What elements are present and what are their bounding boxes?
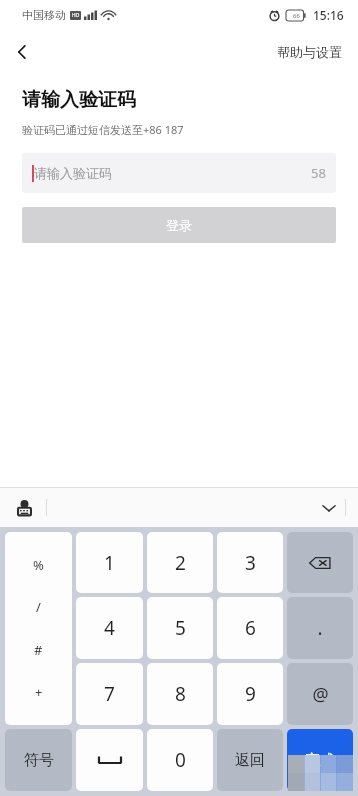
staticText: 6 [245, 615, 256, 641]
staticText: 4 [104, 615, 115, 641]
button[interactable]: Hide keyboard [314, 493, 344, 523]
staticText: 帮助与设置 [277, 44, 342, 60]
button[interactable]: 7 [76, 663, 143, 725]
staticText: 请输入验证码 [22, 88, 136, 112]
staticText: 登录 [166, 217, 192, 233]
staticText: 7 [104, 681, 115, 707]
button[interactable]: 帮助与设置 [261, 36, 358, 68]
staticText: 2 [175, 550, 186, 576]
staticText: 5 [175, 615, 186, 641]
staticText: 1 [104, 550, 115, 576]
staticText: 中国移动 [22, 8, 66, 22]
staticText: 8 [175, 681, 186, 707]
staticText: 15:16 [313, 7, 344, 23]
staticText: 验证码已通过短信发送至+86 187 [22, 122, 184, 137]
staticText: . [317, 615, 323, 641]
button[interactable]: % [5, 532, 72, 725]
staticText: 9 [245, 681, 256, 707]
button[interactable]: 6 [217, 597, 283, 659]
button[interactable]: Space [76, 729, 143, 791]
staticText: 58 [311, 164, 326, 182]
button[interactable]: 9 [217, 663, 283, 725]
staticText: # [34, 641, 43, 659]
button[interactable]: Back [0, 30, 44, 74]
staticText: 完成 [305, 751, 335, 770]
button[interactable]: 0 [147, 729, 213, 791]
staticText: @ [312, 682, 329, 707]
button[interactable]: Secure keyboard [8, 492, 40, 524]
button[interactable]: 登录 [22, 207, 336, 243]
button[interactable]: @ [287, 663, 353, 725]
staticText: 3 [245, 550, 256, 576]
staticText: 符号 [24, 751, 54, 770]
staticText: HD [72, 12, 80, 19]
button[interactable]: 3 [217, 532, 283, 593]
button[interactable]: 2 [147, 532, 213, 593]
button[interactable]: 5 [147, 597, 213, 659]
button[interactable]: 8 [147, 663, 213, 725]
button[interactable]: 符号 [5, 729, 72, 791]
button[interactable]: . [287, 597, 353, 659]
staticText: + [35, 683, 43, 701]
staticText: 0 [175, 747, 186, 773]
staticText: 请输入验证码 [34, 165, 112, 181]
staticText: % [33, 556, 44, 574]
button[interactable]: 请输入验证码 [22, 153, 336, 193]
button[interactable]: 4 [76, 597, 143, 659]
button[interactable]: 返回 [217, 729, 283, 791]
button[interactable]: Backspace [287, 532, 353, 593]
staticText: / [36, 598, 41, 616]
staticText: 返回 [235, 751, 265, 770]
button[interactable]: 1 [76, 532, 143, 593]
staticText: 66 [293, 12, 300, 20]
button[interactable]: 完成 [287, 729, 353, 791]
